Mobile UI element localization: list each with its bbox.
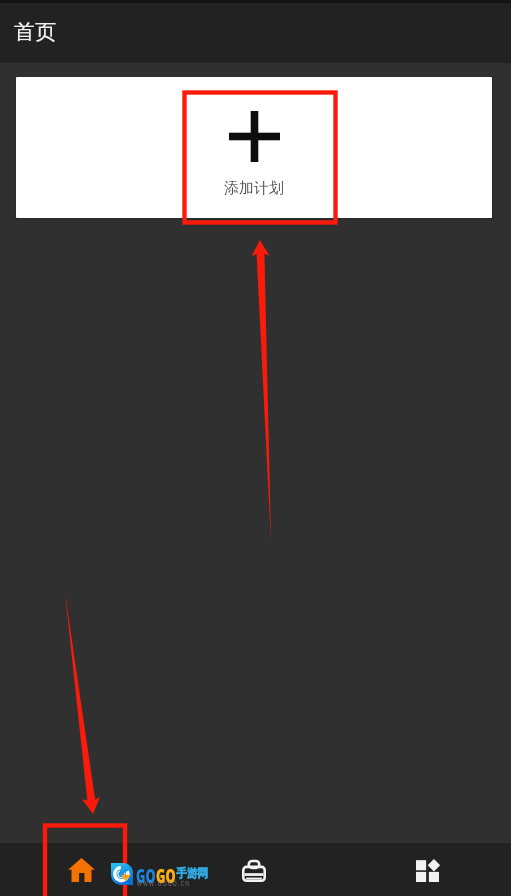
staticText: W W W . G O G O . C N [137,879,190,889]
staticText: GO [156,863,176,889]
button[interactable]: 添加计划 [188,77,320,218]
staticText: 添加计划 [224,179,284,198]
button[interactable]: Apps [359,844,495,896]
staticText: 首页 [14,19,56,45]
staticText: GO [136,863,156,889]
button[interactable]: Home [13,843,149,896]
button[interactable]: Work [186,846,322,896]
staticText: 手游网 [176,865,208,880]
